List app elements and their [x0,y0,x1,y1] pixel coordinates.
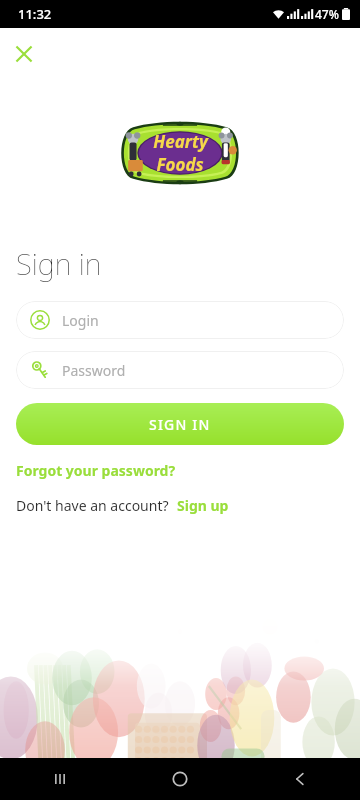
button[interactable]: Close [4,34,44,74]
staticText: 47% [315,6,339,22]
button[interactable]: Forgot your password? [16,461,176,480]
button[interactable]: SIGN IN [16,403,344,445]
staticText: Password [62,361,126,380]
staticText: Sign in [16,244,102,283]
button[interactable]: Sign up [177,496,229,515]
button[interactable]: Password [16,351,344,389]
staticText: Don't have an account? [16,496,169,515]
staticText: Forgot your password? [16,461,176,480]
staticText: Hearty [153,130,208,153]
button[interactable]: Recent apps [0,758,120,800]
staticText: Login [62,311,99,330]
button[interactable]: Back [240,758,360,800]
staticText: SIGN IN [149,415,211,434]
button[interactable]: Login [16,301,344,339]
button[interactable]: Home [120,758,240,800]
staticText: 11:32 [18,5,52,23]
staticText: Foods [156,153,204,176]
staticText: Sign up [177,496,229,515]
